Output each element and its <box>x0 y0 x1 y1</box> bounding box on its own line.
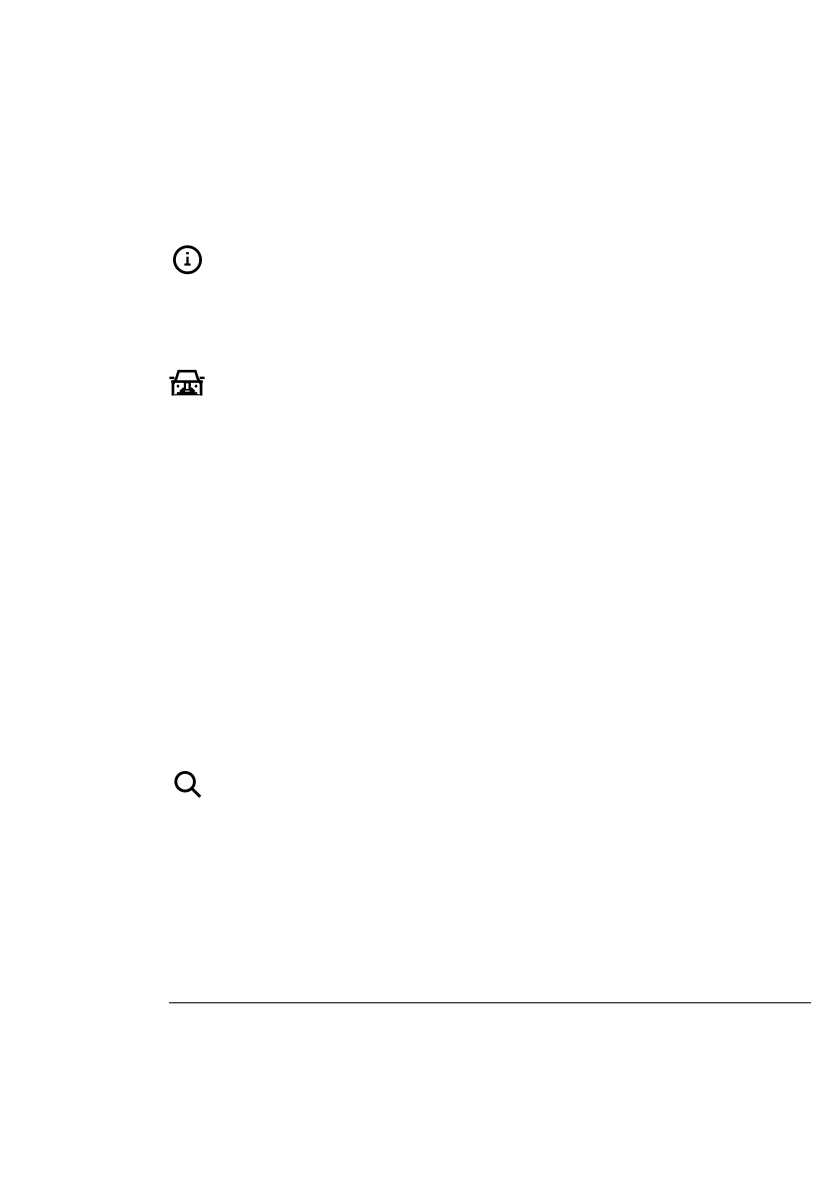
button[interactable]: My Car <box>169 349 810 418</box>
button[interactable]: Search <box>170 766 811 803</box>
button[interactable]: Vehicle Information <box>173 225 814 294</box>
